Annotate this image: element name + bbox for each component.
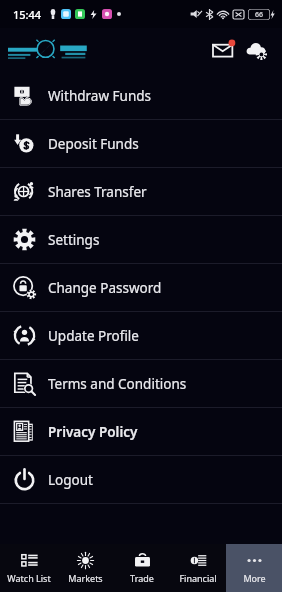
staticText: 15:44 bbox=[13, 7, 42, 22]
staticText: Trade bbox=[130, 572, 154, 584]
staticText: Privacy Policy bbox=[48, 423, 138, 441]
button[interactable]: Logout bbox=[0, 456, 282, 503]
staticText: Terms and Conditions bbox=[48, 375, 187, 393]
button[interactable]: Trade bbox=[114, 544, 170, 592]
button[interactable]: Watch List bbox=[0, 544, 57, 592]
button[interactable]: Messages bbox=[209, 35, 239, 65]
staticText: More bbox=[243, 572, 266, 584]
button[interactable]: Markets bbox=[57, 544, 114, 592]
staticText: 66 bbox=[255, 10, 264, 20]
staticText: Deposit Funds bbox=[48, 135, 139, 153]
button[interactable]: Settings bbox=[242, 35, 272, 65]
staticText: Settings bbox=[48, 231, 100, 249]
button[interactable]: Shares Transfer bbox=[0, 168, 282, 215]
button[interactable]: Deposit Funds bbox=[0, 120, 282, 167]
button[interactable]: More bbox=[226, 544, 282, 592]
staticText: Update Profile bbox=[48, 327, 139, 345]
button[interactable]: Change Password bbox=[0, 264, 282, 311]
staticText: Watch List bbox=[7, 572, 51, 584]
staticText: Withdraw Funds bbox=[48, 87, 152, 105]
button[interactable]: Update Profile bbox=[0, 312, 282, 359]
button[interactable]: Financial bbox=[170, 544, 226, 592]
button[interactable]: Withdraw Funds bbox=[0, 72, 282, 119]
button[interactable]: Privacy Policy bbox=[0, 408, 282, 455]
staticText: Change Password bbox=[48, 279, 162, 297]
staticText: Markets bbox=[68, 572, 103, 584]
staticText: Shares Transfer bbox=[48, 183, 147, 201]
button[interactable]: Settings bbox=[0, 216, 282, 263]
button[interactable]: Terms and Conditions bbox=[0, 360, 282, 407]
staticText: Financial bbox=[179, 572, 217, 584]
staticText: Logout bbox=[48, 471, 93, 489]
